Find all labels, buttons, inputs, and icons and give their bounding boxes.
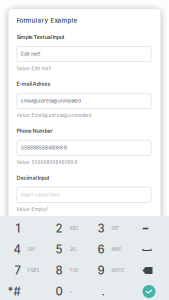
button[interactable]: 55669856848069 8 xyxy=(16,140,151,156)
staticText: Value: Email@adress@unmasked xyxy=(16,113,91,118)
staticText: TUV xyxy=(69,268,78,273)
staticText: Formulary Example xyxy=(16,17,77,24)
staticText: JKL xyxy=(69,247,76,252)
staticText: Value: Empty! xyxy=(16,206,47,212)
button[interactable]: 5 xyxy=(42,239,84,260)
button[interactable]: Edit me!! xyxy=(16,46,151,62)
staticText: 2 xyxy=(55,222,62,235)
button[interactable]: Email@adress@unmasked xyxy=(16,93,151,109)
staticText: 8 xyxy=(55,264,62,277)
staticText: Value: Edit me!! xyxy=(16,66,50,71)
staticText: GHI xyxy=(27,247,34,252)
staticText: *# xyxy=(7,285,20,298)
button[interactable]: 3 xyxy=(84,218,126,239)
button[interactable]: Accept xyxy=(126,281,168,300)
staticText: 9 xyxy=(97,264,104,277)
staticText: Email@adress@unmasked xyxy=(21,98,81,104)
staticText: . xyxy=(101,285,104,298)
button[interactable]: . xyxy=(84,281,126,300)
staticText: Insert value here xyxy=(21,192,60,197)
staticText: E-mail Adress xyxy=(16,81,50,87)
staticText: 3 xyxy=(97,222,104,235)
button[interactable]: *# xyxy=(0,281,42,300)
staticText: 7 xyxy=(14,264,20,277)
button[interactable]: 8 xyxy=(42,260,84,281)
staticText: Edit me!! xyxy=(21,51,40,57)
staticText: WXYZ xyxy=(111,268,124,273)
staticText: Value: 55669856848069 8 xyxy=(16,159,77,165)
button[interactable]: 1 xyxy=(0,218,42,239)
button[interactable]: 7 xyxy=(0,260,42,281)
button[interactable]: 9 xyxy=(84,260,126,281)
button[interactable]: 4 xyxy=(0,239,42,260)
staticText: 4 xyxy=(13,243,20,256)
staticText: DEF xyxy=(111,226,118,231)
button[interactable]: Delete xyxy=(126,260,168,281)
staticText: PQRS xyxy=(27,268,39,273)
button[interactable]: 0 xyxy=(42,281,84,300)
staticText: ABC xyxy=(69,226,78,231)
staticText: Decimal Input xyxy=(16,174,49,181)
button[interactable]: Next field xyxy=(126,239,168,260)
staticText: 1 xyxy=(15,222,20,235)
button[interactable]: Minus xyxy=(126,218,168,239)
staticText: Phone Number xyxy=(16,128,52,134)
staticText: 55669856848069 8 xyxy=(21,145,67,151)
staticText: 0 xyxy=(55,285,62,298)
staticText: + xyxy=(69,289,72,294)
staticText: 5 xyxy=(55,243,62,256)
staticText: Simple Textual Input xyxy=(16,34,64,40)
button[interactable]: Insert value here xyxy=(16,187,151,203)
button[interactable]: 6 xyxy=(84,239,126,260)
staticText: MNO xyxy=(111,247,121,252)
staticText: 6 xyxy=(97,243,104,256)
button[interactable]: 2 xyxy=(42,218,84,239)
